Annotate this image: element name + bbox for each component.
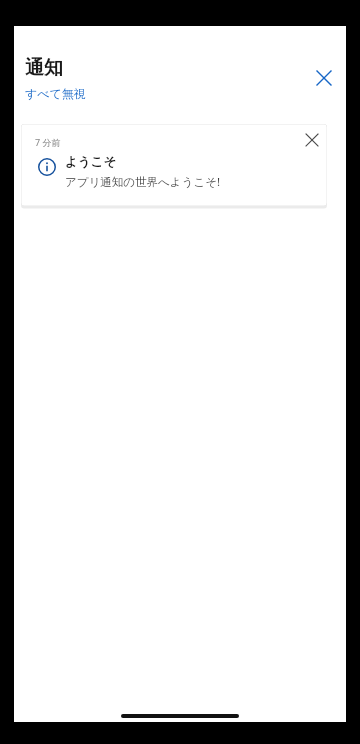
button[interactable]: 閉じる [310, 64, 338, 92]
staticText: 通知 [25, 56, 63, 80]
button[interactable]: 7 分前 [21, 124, 327, 206]
button[interactable]: 通知を閉じる [300, 128, 324, 152]
staticText: アプリ通知の世界へようこそ! [65, 174, 221, 190]
staticText: すべて無視 [25, 86, 86, 101]
other: 情報 [38, 158, 56, 176]
button[interactable]: すべて無視 [25, 86, 86, 101]
staticText: 7 分前 [35, 136, 61, 148]
staticText: ようこそ [65, 154, 117, 170]
